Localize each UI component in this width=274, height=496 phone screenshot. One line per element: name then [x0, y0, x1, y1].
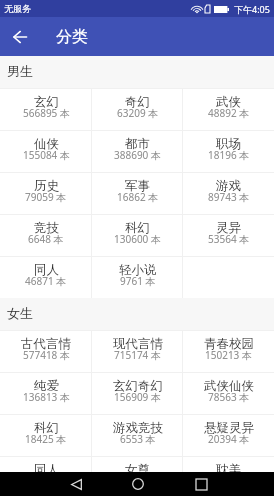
button[interactable]: 灵异 [183, 214, 274, 256]
button[interactable]: 仙侠 [0, 130, 92, 172]
staticText: 46871 本 [25, 274, 67, 288]
staticText: 灵异 [216, 220, 241, 236]
button[interactable]: 职场 [183, 130, 274, 172]
staticText: 玄幻 [34, 94, 59, 110]
staticText: 军事 [125, 178, 150, 194]
staticText: 155084 本 [23, 148, 70, 162]
staticText: 18196 本 [208, 148, 250, 162]
button[interactable]: 游戏 [183, 172, 274, 214]
button[interactable]: 武侠仙侠 [183, 372, 274, 414]
staticText: 轻小说 [119, 262, 157, 278]
button[interactable]: 武侠 [183, 88, 274, 130]
staticText: 游戏 [216, 178, 241, 194]
staticText: 18425 本 [25, 432, 67, 446]
staticText: 现代言情 [113, 336, 163, 352]
staticText: 9761 本 [120, 274, 156, 288]
staticText: 150213 本 [205, 348, 252, 362]
staticText: 女生 [7, 305, 33, 321]
staticText: 游戏竞技 [113, 420, 163, 436]
button[interactable]: Back [0, 17, 40, 56]
button[interactable]: 竞技 [0, 214, 92, 256]
button[interactable]: 轻小说 [92, 256, 183, 298]
staticText: 玄幻奇幻 [113, 378, 163, 394]
staticText: 耽美 [216, 462, 241, 472]
button[interactable]: 都市 [92, 130, 183, 172]
staticText: 都市 [125, 136, 150, 152]
staticText: 156909 本 [114, 390, 161, 404]
staticText: 历史 [34, 178, 59, 194]
staticText: 武侠 [216, 94, 241, 110]
staticText: 科幻 [125, 220, 150, 236]
staticText: 职场 [216, 136, 241, 152]
staticText: 130600 本 [114, 232, 161, 246]
button[interactable]: 游戏竞技 [92, 414, 183, 456]
staticText: 无服务 [4, 3, 31, 14]
staticText: 武侠仙侠 [204, 378, 254, 394]
staticText: 同人 [34, 262, 59, 278]
button[interactable]: 玄幻 [0, 88, 92, 130]
staticText: 下午4:05 [234, 3, 270, 15]
staticText: 6648 本 [28, 232, 64, 246]
staticText: 纯爱 [34, 378, 59, 394]
button[interactable]: 女尊 [92, 456, 183, 472]
button[interactable]: 历史 [0, 172, 92, 214]
staticText: 388690 本 [114, 148, 161, 162]
staticText: 竞技 [34, 220, 59, 236]
button[interactable]: 悬疑灵异 [183, 414, 274, 456]
button[interactable]: 军事 [92, 172, 183, 214]
button[interactable]: 青春校园 [183, 330, 274, 372]
staticText: 79059 本 [25, 190, 67, 204]
staticText: 53564 本 [208, 232, 250, 246]
staticText: 566895 本 [23, 106, 70, 120]
staticText: 715174 本 [114, 348, 161, 362]
staticText: 古代言情 [21, 336, 71, 352]
staticText: 63209 本 [117, 106, 159, 120]
button[interactable]: 玄幻奇幻 [92, 372, 183, 414]
staticText: 6553 本 [120, 432, 156, 446]
staticText: 女尊 [125, 462, 150, 472]
staticText: 16862 本 [117, 190, 159, 204]
button[interactable]: 古代言情 [0, 330, 92, 372]
button[interactable]: Back [56, 472, 96, 496]
staticText: 20394 本 [208, 432, 250, 446]
staticText: 奇幻 [125, 94, 150, 110]
button[interactable]: 科幻 [0, 414, 92, 456]
staticText: 青春校园 [204, 336, 254, 352]
staticText: 577418 本 [23, 348, 70, 362]
button[interactable]: Home [118, 472, 158, 496]
staticText: 48892 本 [208, 106, 250, 120]
staticText: 分类 [56, 27, 88, 47]
button[interactable]: 纯爱 [0, 372, 92, 414]
button[interactable]: 奇幻 [92, 88, 183, 130]
staticText: 78563 本 [208, 390, 250, 404]
staticText: 同人 [34, 462, 59, 472]
staticText: 仙侠 [34, 136, 59, 152]
button[interactable]: 现代言情 [92, 330, 183, 372]
button[interactable]: 科幻 [92, 214, 183, 256]
staticText: 89743 本 [208, 190, 250, 204]
button[interactable]: 同人 [0, 456, 92, 472]
staticText: 科幻 [34, 420, 59, 436]
button[interactable]: 耽美 [183, 456, 274, 472]
staticText: 136813 本 [23, 390, 70, 404]
staticText: 悬疑灵异 [204, 420, 254, 436]
button[interactable]: Recents [181, 472, 221, 496]
button[interactable]: 同人 [0, 256, 92, 298]
staticText: 男生 [7, 63, 33, 79]
